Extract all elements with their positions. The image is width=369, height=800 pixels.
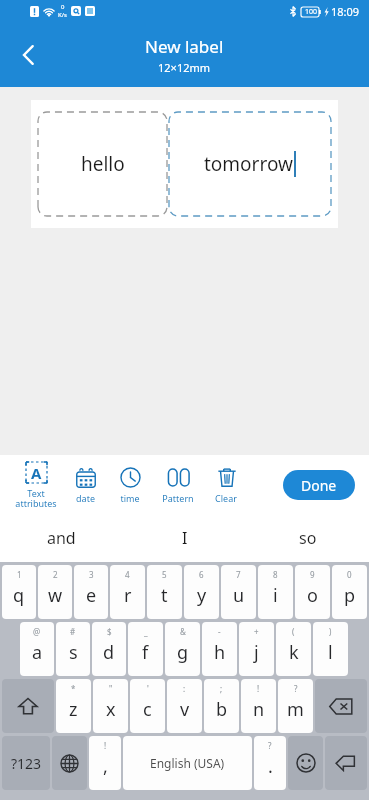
button[interactable]: * bbox=[56, 679, 91, 733]
staticText: p bbox=[344, 583, 356, 608]
button[interactable]: I bbox=[123, 514, 246, 562]
button[interactable]: - bbox=[202, 622, 237, 676]
button[interactable]: # bbox=[56, 622, 90, 676]
staticText: # bbox=[70, 626, 76, 637]
staticText: Done bbox=[301, 476, 337, 495]
staticText: g bbox=[177, 640, 189, 665]
staticText: * bbox=[71, 683, 76, 694]
staticText: i bbox=[273, 583, 278, 608]
button[interactable]: Done bbox=[283, 470, 355, 500]
staticText: $ bbox=[107, 626, 112, 637]
button[interactable]: 0 bbox=[332, 565, 367, 619]
button[interactable]: 3 bbox=[74, 565, 108, 619]
button[interactable]: ?123 bbox=[2, 736, 50, 790]
button[interactable]: 6 bbox=[184, 565, 219, 619]
button[interactable]: ! bbox=[241, 679, 276, 733]
button[interactable]: Pattern bbox=[152, 455, 204, 514]
button[interactable]: 1 bbox=[2, 565, 36, 619]
button[interactable]: ' bbox=[130, 679, 165, 733]
staticText: e bbox=[86, 583, 97, 608]
button[interactable]: Emoji bbox=[288, 736, 323, 790]
button[interactable]: ; bbox=[204, 679, 239, 733]
staticText: Clear bbox=[215, 492, 237, 504]
button[interactable]: 7 bbox=[221, 565, 256, 619]
button[interactable]: so bbox=[246, 514, 369, 562]
staticText: f bbox=[142, 640, 149, 665]
staticText: - bbox=[218, 626, 221, 637]
button[interactable]: ? bbox=[278, 679, 313, 733]
staticText: 9 bbox=[310, 569, 315, 580]
button[interactable]: 8 bbox=[258, 565, 293, 619]
button[interactable]: Shift bbox=[2, 679, 54, 733]
staticText: so bbox=[299, 527, 317, 549]
staticText: hello bbox=[81, 151, 125, 177]
staticText: b bbox=[216, 697, 228, 722]
staticText: h bbox=[214, 640, 226, 665]
staticText: English (USA) bbox=[150, 755, 225, 771]
staticText: 3 bbox=[89, 569, 94, 580]
button[interactable]: ) bbox=[313, 622, 348, 676]
staticText: r bbox=[124, 583, 132, 608]
staticText: New label bbox=[145, 35, 224, 58]
staticText: d bbox=[103, 640, 115, 665]
button[interactable]: English (USA) bbox=[123, 736, 252, 790]
staticText: K/s bbox=[58, 11, 67, 19]
staticText: w bbox=[48, 583, 63, 608]
button[interactable]: Backspace bbox=[315, 679, 367, 733]
button[interactable]: $ bbox=[92, 622, 126, 676]
staticText: ! bbox=[257, 683, 260, 694]
staticText: . bbox=[268, 754, 273, 779]
staticText: 7 bbox=[236, 569, 241, 580]
staticText: + bbox=[254, 626, 259, 637]
staticText: t bbox=[161, 583, 168, 608]
button[interactable]: 5 bbox=[147, 565, 182, 619]
button[interactable]: _ bbox=[128, 622, 163, 676]
staticText: 8 bbox=[273, 569, 278, 580]
button[interactable]: ! bbox=[89, 736, 121, 790]
staticText: u bbox=[233, 583, 245, 608]
button[interactable]: ? bbox=[254, 736, 286, 790]
staticText: 4 bbox=[125, 569, 130, 580]
button[interactable]: & bbox=[165, 622, 200, 676]
button[interactable]: Change language bbox=[52, 736, 87, 790]
staticText: z bbox=[69, 697, 78, 722]
staticText: ' bbox=[147, 683, 149, 694]
staticText: 12×12mm bbox=[158, 60, 211, 75]
staticText: I bbox=[182, 527, 188, 549]
staticText: 18:09 bbox=[331, 4, 360, 19]
button[interactable]: hello bbox=[37, 111, 168, 217]
button[interactable]: ( bbox=[276, 622, 311, 676]
staticText: ? bbox=[294, 683, 298, 694]
staticText: 0 bbox=[347, 569, 352, 580]
button[interactable]: @ bbox=[20, 622, 54, 676]
button[interactable]: date bbox=[62, 455, 108, 514]
button[interactable]: Enter bbox=[325, 736, 367, 790]
button[interactable]: A bbox=[10, 455, 62, 514]
staticText: tomorrow bbox=[204, 151, 293, 177]
button[interactable]: 4 bbox=[110, 565, 145, 619]
button[interactable]: Back bbox=[6, 33, 50, 77]
staticText: Pattern bbox=[162, 492, 194, 504]
staticText: o bbox=[307, 583, 318, 608]
staticText: a bbox=[32, 640, 43, 665]
button[interactable]: " bbox=[93, 679, 128, 733]
button[interactable]: + bbox=[239, 622, 274, 676]
staticText: k bbox=[289, 640, 299, 665]
staticText: s bbox=[69, 640, 78, 665]
button[interactable]: Clear bbox=[204, 455, 248, 514]
staticText: " bbox=[109, 683, 113, 694]
staticText: date bbox=[76, 492, 95, 504]
staticText: q bbox=[13, 583, 25, 608]
staticText: v bbox=[180, 697, 190, 722]
button[interactable]: : bbox=[167, 679, 202, 733]
button[interactable]: 9 bbox=[295, 565, 330, 619]
staticText: y bbox=[197, 583, 207, 608]
button[interactable]: and bbox=[0, 514, 123, 562]
button[interactable]: tomorrow bbox=[168, 111, 332, 217]
staticText: 1 bbox=[17, 569, 22, 580]
staticText: n bbox=[253, 697, 265, 722]
button[interactable]: 2 bbox=[38, 565, 72, 619]
staticText: : bbox=[183, 683, 186, 694]
staticText: & bbox=[180, 626, 186, 637]
button[interactable]: time bbox=[108, 455, 152, 514]
